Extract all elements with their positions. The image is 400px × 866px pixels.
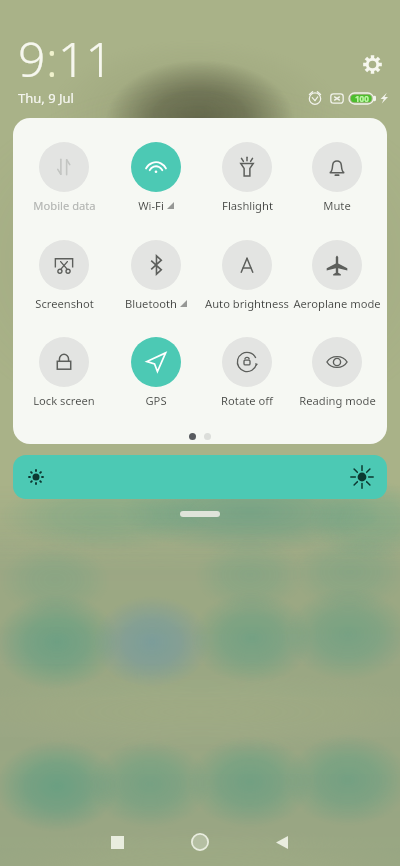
staticText: Mobile data — [33, 198, 96, 213]
staticText: Reading mode — [299, 393, 376, 408]
button[interactable]: Aeroplane mode — [291, 240, 383, 312]
staticText: : — [46, 26, 58, 91]
staticText: Flashlight — [222, 198, 273, 213]
button[interactable]: Home — [173, 815, 227, 866]
staticText: Bluetooth — [125, 296, 177, 311]
staticText: Screenshot — [35, 296, 94, 311]
staticText: Thu, 9 Jul — [18, 89, 74, 107]
staticText: 11 — [58, 26, 113, 91]
staticText: Rotate off — [221, 393, 273, 408]
button[interactable]: GPS — [110, 337, 202, 409]
staticText: 9 — [18, 26, 46, 91]
staticText: Aeroplane mode — [293, 296, 381, 311]
button[interactable]: Settings — [356, 48, 388, 80]
staticText: Mute — [323, 198, 351, 213]
button[interactable]: Wi-Fi — [110, 142, 202, 214]
button[interactable]: Flashlight — [201, 142, 293, 214]
staticText: Lock screen — [33, 393, 95, 408]
button[interactable]: Back — [255, 815, 309, 866]
staticText: Auto brightness — [205, 296, 289, 311]
button[interactable]: Reading mode — [291, 337, 383, 409]
button[interactable]: Bluetooth — [110, 240, 202, 312]
button[interactable]: Auto brightness — [201, 240, 293, 312]
button[interactable]: Screenshot — [18, 240, 110, 312]
staticText: GPS — [145, 393, 167, 408]
staticText: 100 — [355, 93, 369, 104]
button[interactable]: Mute — [291, 142, 383, 214]
staticText: Wi-Fi — [138, 198, 164, 213]
button[interactable]: Lock screen — [18, 337, 110, 409]
button[interactable]: Rotate off — [201, 337, 293, 409]
button[interactable]: Recents — [90, 815, 144, 866]
button[interactable]: Mobile data — [18, 142, 110, 214]
button[interactable]: Brightness — [13, 455, 387, 499]
